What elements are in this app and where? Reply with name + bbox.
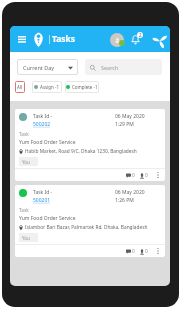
staticText: 0 <box>145 172 148 179</box>
staticText: 1:26 PM <box>115 197 134 204</box>
staticText: 500202 <box>33 121 51 128</box>
staticText: Assign -1 <box>40 84 60 90</box>
button[interactable]: 0 <box>140 172 148 179</box>
staticText: All <box>17 84 23 90</box>
button[interactable]: Search <box>85 59 162 75</box>
button[interactable]: All <box>15 81 25 93</box>
staticText: 0 <box>132 172 135 179</box>
button[interactable]: 0 <box>126 248 135 255</box>
staticText: 1:29 PM <box>115 121 134 128</box>
staticText: You <box>22 235 30 241</box>
button[interactable]: Notifications <box>127 31 143 47</box>
button[interactable]: Complete -1 <box>65 81 99 93</box>
button[interactable]: More options <box>155 170 161 180</box>
staticText: Task Id - <box>33 189 53 196</box>
staticText: You <box>22 159 30 165</box>
staticText: Current Day <box>23 64 55 71</box>
button[interactable]: Assign -1 <box>32 81 62 93</box>
staticText: Complete -1 <box>72 84 98 90</box>
button[interactable]: 0 <box>126 172 135 179</box>
button[interactable]: Profile <box>109 32 124 47</box>
button[interactable]: More options <box>155 246 161 256</box>
staticText: Task <box>19 207 29 214</box>
staticText: 0 <box>132 248 135 255</box>
staticText: Yum Food Order Service <box>19 215 76 222</box>
staticText: 06 May 2020 <box>115 189 145 196</box>
staticText: 06 May 2020 <box>115 113 145 120</box>
staticText: Task <box>19 131 29 138</box>
staticText: Habib Market, Road 9/C, Dhaka 1230, Bang… <box>25 148 137 155</box>
staticText: Islambor Bari Bazar, Palmartek Rd, Dhaka… <box>25 224 148 231</box>
staticText: Yum Food Order Service <box>19 139 76 146</box>
staticText: 500201 <box>33 197 51 204</box>
staticText: 0 <box>145 248 148 255</box>
staticText: 2 <box>139 32 142 38</box>
button[interactable]: Task Id - <box>15 109 165 181</box>
button[interactable]: Task Id - <box>15 185 165 257</box>
button[interactable]: 0 <box>140 248 148 255</box>
staticText: Task Id - <box>33 113 53 120</box>
staticText: Tasks <box>52 33 76 45</box>
button[interactable]: Current Day <box>17 59 78 75</box>
button[interactable]: Menu <box>15 32 29 46</box>
staticText: Search <box>101 64 119 71</box>
